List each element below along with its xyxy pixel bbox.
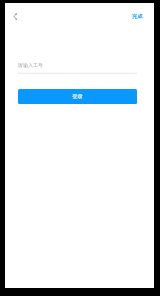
button[interactable]: 登录 — [18, 89, 137, 104]
button[interactable]: 完成 — [128, 8, 147, 24]
staticText: 请输入工号 — [18, 62, 43, 68]
staticText: 登录 — [72, 93, 83, 100]
staticText: 完成 — [132, 13, 143, 20]
button[interactable]: Back — [7, 8, 24, 25]
